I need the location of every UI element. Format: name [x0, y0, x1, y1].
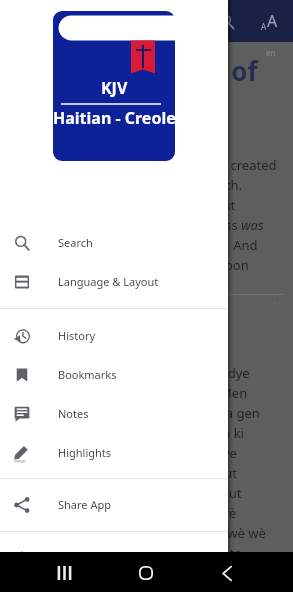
- button[interactable]: Search: [0, 223, 228, 262]
- button[interactable]: History: [0, 316, 228, 355]
- staticText: In the beginning, the Lord God has creat…: [14, 156, 277, 274]
- staticText: Highlights: [58, 445, 112, 460]
- button[interactable]: Rate App: [0, 538, 228, 577]
- button[interactable]: Notes: [0, 394, 228, 433]
- button[interactable]: Search: [211, 6, 241, 36]
- staticText: Share App: [58, 497, 111, 512]
- button[interactable]: Language & Layout: [0, 262, 228, 301]
- staticText: en: [266, 47, 276, 58]
- button[interactable]: Text size: [253, 5, 285, 37]
- button[interactable]: Highlights: [0, 433, 228, 472]
- staticText: Haitian - Creole: [53, 107, 175, 129]
- button[interactable]: Back: [207, 553, 247, 592]
- button[interactable]: Share App: [0, 485, 228, 524]
- staticText: History: [58, 328, 96, 343]
- staticText: A: [267, 10, 278, 32]
- staticText: Nan konmansman nèt la, se te Bondye ki t…: [14, 364, 266, 582]
- staticText: Notes: [58, 406, 89, 421]
- staticText: Bookmarks: [58, 367, 117, 382]
- button[interactable]: Home: [126, 553, 166, 592]
- button[interactable]: Bookmarks: [0, 355, 228, 394]
- staticText: KJV: [101, 77, 128, 99]
- button[interactable]: Recents: [44, 553, 84, 592]
- staticText: A: [261, 21, 267, 32]
- staticText: Language & Layout: [58, 274, 159, 289]
- staticText: Search: [58, 235, 93, 250]
- staticText: Jenèz - Liv Moyiz of: [14, 53, 258, 88]
- staticText: Rate App: [58, 550, 105, 565]
